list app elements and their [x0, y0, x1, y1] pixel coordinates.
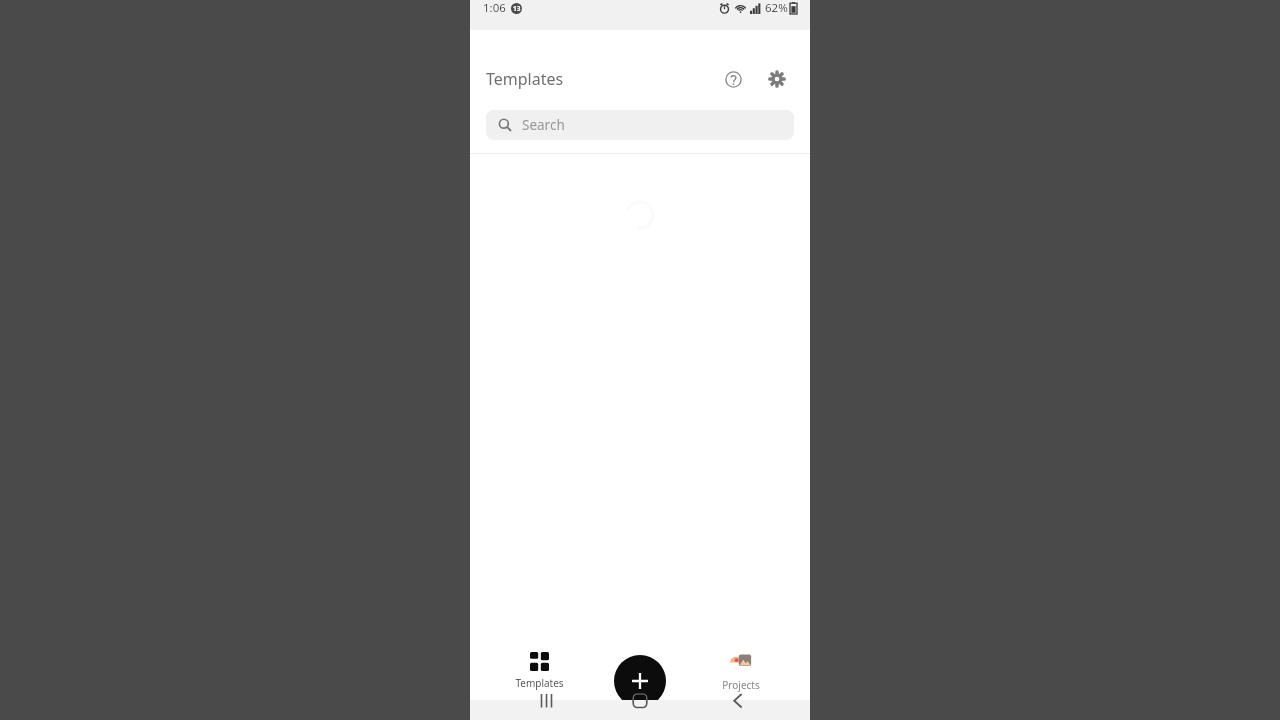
button[interactable]: Create new	[614, 655, 666, 707]
button[interactable]: Projects	[672, 645, 810, 698]
staticText: 62%	[765, 0, 788, 16]
staticText: 1:06	[483, 0, 506, 16]
staticText: Projects	[722, 678, 760, 692]
button[interactable]: Settings	[760, 62, 794, 96]
button[interactable]: Templates	[470, 646, 608, 696]
staticText: Templates	[515, 676, 564, 690]
staticText: 13	[513, 4, 521, 13]
staticText: Templates	[486, 68, 564, 90]
staticText: Search	[522, 116, 565, 134]
button[interactable]: Help	[716, 62, 750, 96]
button[interactable]: Search	[486, 110, 794, 140]
